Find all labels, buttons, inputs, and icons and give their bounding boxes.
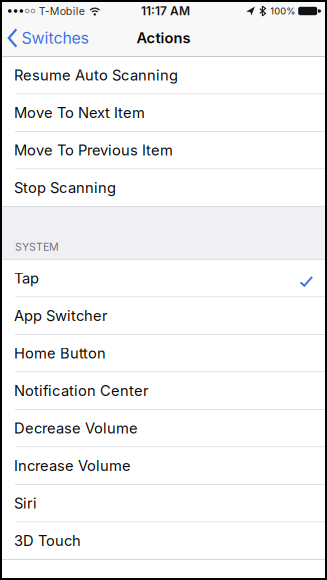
button[interactable]: Tap [2,260,325,297]
button[interactable]: Increase Volume [2,447,325,485]
staticText: 3D Touch [14,532,81,549]
staticText: Decrease Volume [14,419,138,437]
button[interactable]: App Switcher [2,297,325,335]
staticText: Tap [14,269,39,287]
staticText: 11:17 AM [141,4,190,18]
button[interactable]: 3D Touch [2,522,325,560]
staticText: Actions [136,29,190,47]
button[interactable]: Resume Auto Scanning [2,57,325,94]
staticText: Notification Center [14,382,149,399]
button[interactable]: Back [2,20,94,56]
staticText: Resume Auto Scanning [14,66,178,84]
button[interactable]: Siri [2,485,325,522]
staticText: App Switcher [14,307,108,324]
button[interactable]: Move To Next Item [2,94,325,132]
staticText: Home Button [14,344,106,362]
button[interactable]: Move To Previous Item [2,132,325,169]
staticText: Stop Scanning [14,179,116,196]
staticText: Increase Volume [14,457,131,474]
staticText: Move To Next Item [14,104,145,121]
staticText: Move To Previous Item [14,141,173,159]
button[interactable]: Notification Center [2,372,325,410]
staticText: Siri [14,494,37,512]
staticText: T-Mobile [39,5,85,17]
staticText: 100% [270,5,295,16]
staticText: SYSTEM [15,240,59,253]
button[interactable]: Home Button [2,335,325,372]
staticText: Switches [21,29,88,47]
button[interactable]: Stop Scanning [2,169,325,207]
button[interactable]: Decrease Volume [2,410,325,447]
